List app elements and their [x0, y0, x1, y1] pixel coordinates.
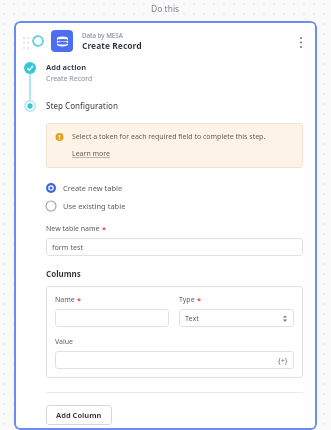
button[interactable] — [55, 309, 169, 327]
staticText: Step Configuration — [46, 100, 118, 111]
staticText: Add action — [46, 62, 87, 72]
button[interactable]: Step status — [32, 35, 44, 47]
button[interactable]: Insert token — [55, 351, 294, 369]
button[interactable]: Learn more — [72, 149, 111, 159]
staticText: Do this — [151, 3, 180, 15]
button[interactable]: Use existing table — [46, 200, 126, 212]
staticText: Name — [55, 295, 75, 305]
staticText: Value — [55, 337, 74, 347]
button[interactable]: form test — [46, 238, 303, 256]
staticText: Add Column — [56, 410, 102, 420]
staticText: Create new table — [63, 183, 123, 193]
button[interactable]: Create new table — [46, 182, 123, 194]
staticText: form test — [52, 242, 84, 252]
staticText: Type — [179, 295, 195, 305]
staticText: Columns — [46, 268, 81, 279]
staticText: Create Record — [82, 40, 142, 52]
staticText: * — [77, 295, 82, 305]
button[interactable]: More options — [293, 33, 309, 49]
staticText: Text — [185, 313, 282, 323]
button[interactable]: Add Column — [46, 405, 112, 425]
staticText: Use existing table — [63, 201, 126, 211]
staticText: * — [102, 224, 107, 234]
button[interactable]: Text — [179, 309, 294, 327]
staticText: Data by MESA — [82, 31, 123, 39]
staticText: * — [197, 295, 202, 305]
staticText: Create Record — [46, 74, 93, 84]
button[interactable]: {+} — [278, 355, 288, 365]
staticText: Select a token for each required field t… — [72, 132, 266, 142]
staticText: New table name — [46, 224, 100, 234]
